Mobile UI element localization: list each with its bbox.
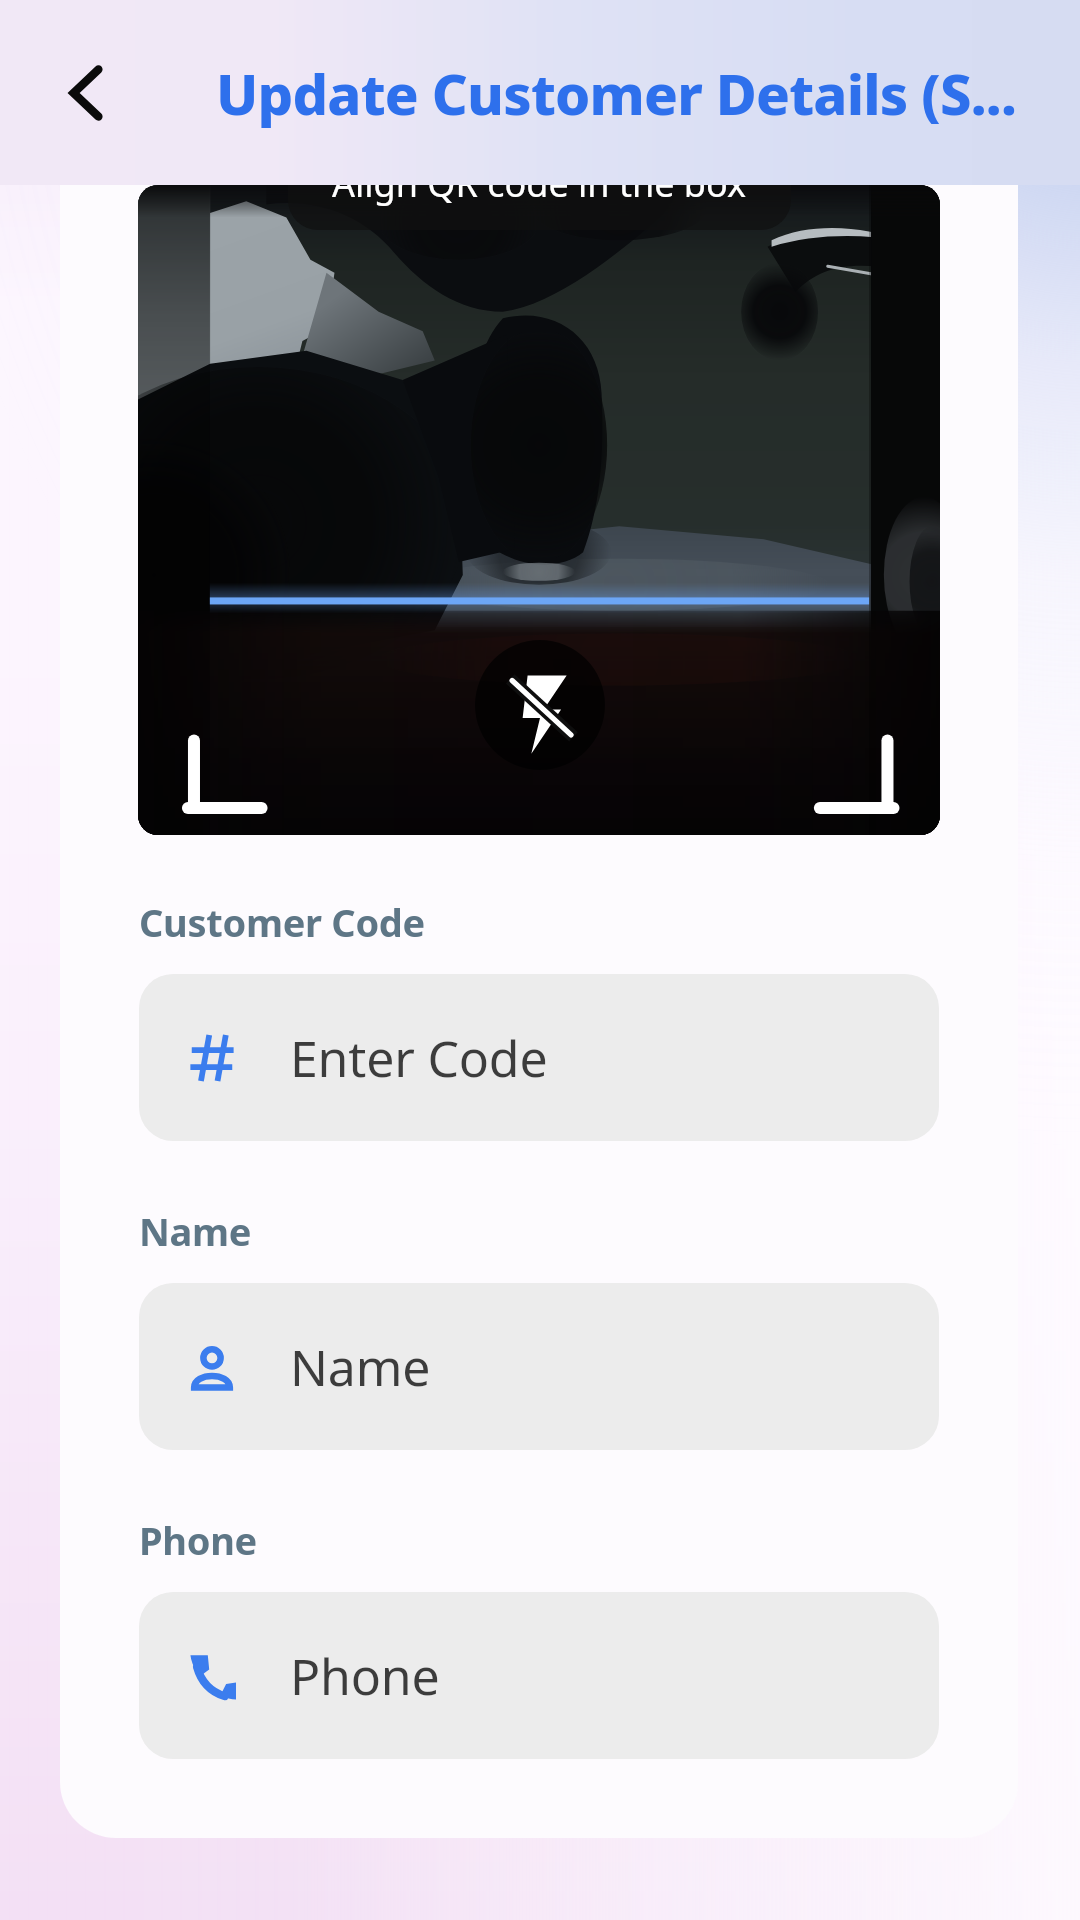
button[interactable]: Toggle flash xyxy=(475,640,605,770)
button[interactable]: Phone xyxy=(139,1592,939,1759)
staticText: Name xyxy=(290,1333,431,1401)
staticText: Align QR code in the box xyxy=(332,185,747,208)
staticText: Name xyxy=(139,1205,252,1257)
button[interactable]: Back xyxy=(36,43,136,143)
staticText: Phone xyxy=(290,1642,440,1710)
button[interactable]: Name xyxy=(139,1283,939,1450)
staticText: Enter Code xyxy=(290,1024,548,1092)
staticText: Customer Code xyxy=(139,896,425,948)
staticText: Phone xyxy=(139,1514,257,1566)
button[interactable]: Enter Code xyxy=(139,974,939,1141)
staticText: Update Customer Details (S... xyxy=(216,55,1017,131)
